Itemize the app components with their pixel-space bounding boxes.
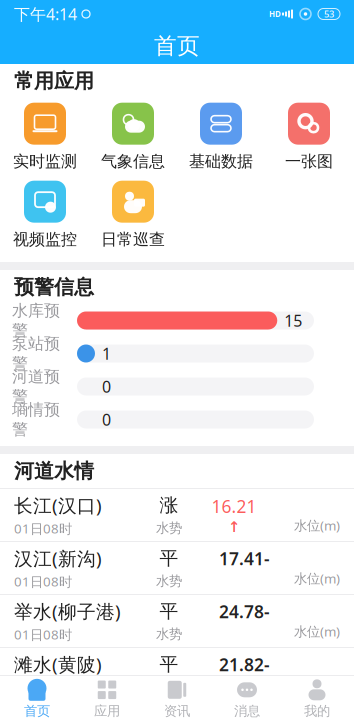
staticText: 水位(m) [294,675,340,693]
staticText: 视频监控 [13,230,77,249]
staticText: 实时监测 [13,152,77,171]
button[interactable]: 消息 [212,675,282,723]
staticText: 水库预警 [12,301,60,340]
staticText: 水势 [156,520,182,536]
staticText: 水势 [156,573,182,589]
button[interactable]: 视频监控 [1,176,89,254]
staticText: 滩水(黄陂) [14,652,102,677]
staticText: 首页 [24,703,50,719]
staticText: 水势 [156,626,182,642]
staticText: 河道水情 [14,459,94,483]
staticText: 01日08时 [14,678,72,696]
staticText: 基础数据 [189,152,253,171]
button[interactable]: 长江(汉口) [0,489,354,542]
staticText: 一张图 [285,152,333,171]
staticText: 01日08时 [14,519,72,537]
button[interactable]: 气象信息 [89,98,177,176]
button[interactable]: 实时监测 [1,98,89,176]
staticText: ↑ [228,519,240,535]
staticText: HD [269,9,281,19]
button[interactable]: 应用 [72,675,142,723]
staticText: 水位(m) [294,569,340,587]
staticText: 预警信息 [14,275,94,299]
staticText: 涨 [159,494,178,517]
staticText: 水位(m) [294,622,340,640]
staticText: 1 [102,343,111,364]
staticText: 墒情预警 [12,400,60,439]
button[interactable]: 资讯 [142,675,212,723]
staticText: 汉江(新沟) [14,546,102,571]
staticText: 0 [102,409,111,430]
staticText: 长江(汉口) [14,493,102,518]
staticText: 水位(m) [294,516,340,534]
staticText: 气象信息 [101,152,165,171]
staticText: 16.21 [211,495,256,518]
staticText: 下午4:14 [14,3,77,25]
staticText: 01日08时 [14,625,72,643]
staticText: 21.82- [219,653,270,676]
staticText: 水势 [156,679,182,695]
staticText: 首页 [154,32,200,60]
staticText: 我的 [304,703,330,719]
staticText: 消息 [234,703,260,719]
staticText: 53 [324,8,334,20]
staticText: 河道预警 [12,367,60,406]
button[interactable]: 汉江(新沟) [0,542,354,595]
staticText: 平 [159,600,178,623]
staticText: 01日08时 [14,572,72,590]
staticText: 举水(柳子港) [14,599,121,624]
staticText: 应用 [94,703,120,719]
staticText: 17.41- [219,547,270,570]
staticText: 15 [284,310,302,331]
button[interactable]: 我的 [282,675,352,723]
button[interactable]: 日常巡查 [89,176,177,254]
staticText: 资讯 [164,703,190,719]
staticText: 泵站预警 [12,334,60,373]
staticText: 平 [159,547,178,570]
staticText: 平 [159,653,178,676]
staticText: 0 [102,376,111,397]
staticText: 日常巡查 [101,230,165,249]
staticText: 24.78- [219,600,270,623]
button[interactable]: 举水(柳子港) [0,595,354,648]
button[interactable]: 一张图 [265,98,353,176]
button[interactable]: 基础数据 [177,98,265,176]
button[interactable]: 首页 [2,675,72,723]
button[interactable]: 滩水(黄陂) [0,648,354,701]
staticText: 常用应用 [14,69,94,93]
